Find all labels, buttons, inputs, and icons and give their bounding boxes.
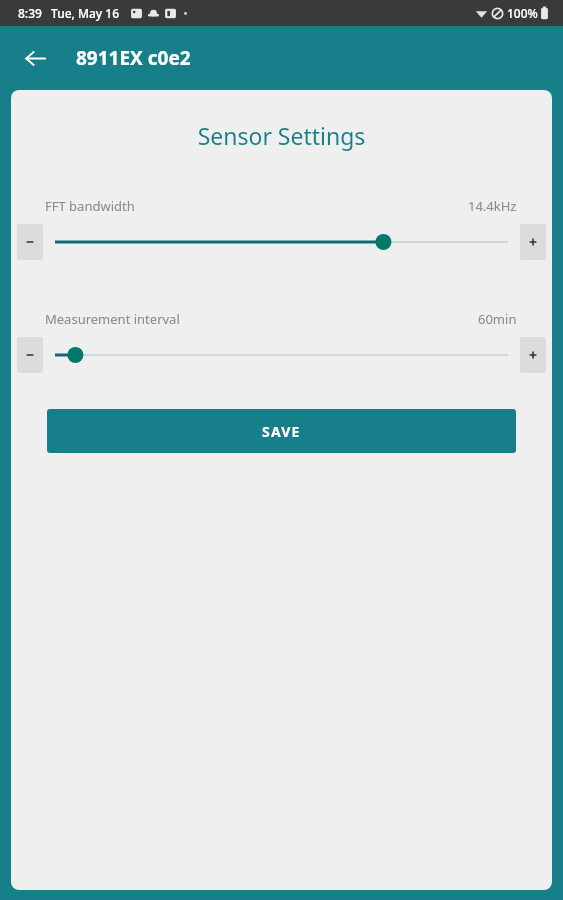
button[interactable]: FFT bandwidth slider	[55, 225, 508, 259]
button[interactable]: Decrease	[17, 337, 43, 373]
button[interactable]: SAVE	[47, 409, 516, 453]
staticText: 100%	[507, 5, 538, 21]
button[interactable]: Increase	[520, 224, 546, 260]
staticText: 60min	[478, 310, 517, 328]
staticText: SAVE	[262, 422, 301, 441]
staticText: 14.4kHz	[468, 197, 517, 215]
staticText: Tue, May 16	[51, 5, 120, 21]
staticText: Sensor Settings	[11, 120, 552, 151]
button[interactable]: Measurement interval slider	[55, 338, 508, 372]
staticText: Measurement interval	[45, 310, 180, 328]
button[interactable]: Decrease	[17, 224, 43, 260]
staticText: 8:39	[18, 5, 42, 21]
staticText: FFT bandwidth	[45, 197, 135, 215]
staticText: 8911EX c0e2	[76, 45, 191, 71]
button[interactable]: Back	[14, 37, 56, 79]
button[interactable]: Increase	[520, 337, 546, 373]
